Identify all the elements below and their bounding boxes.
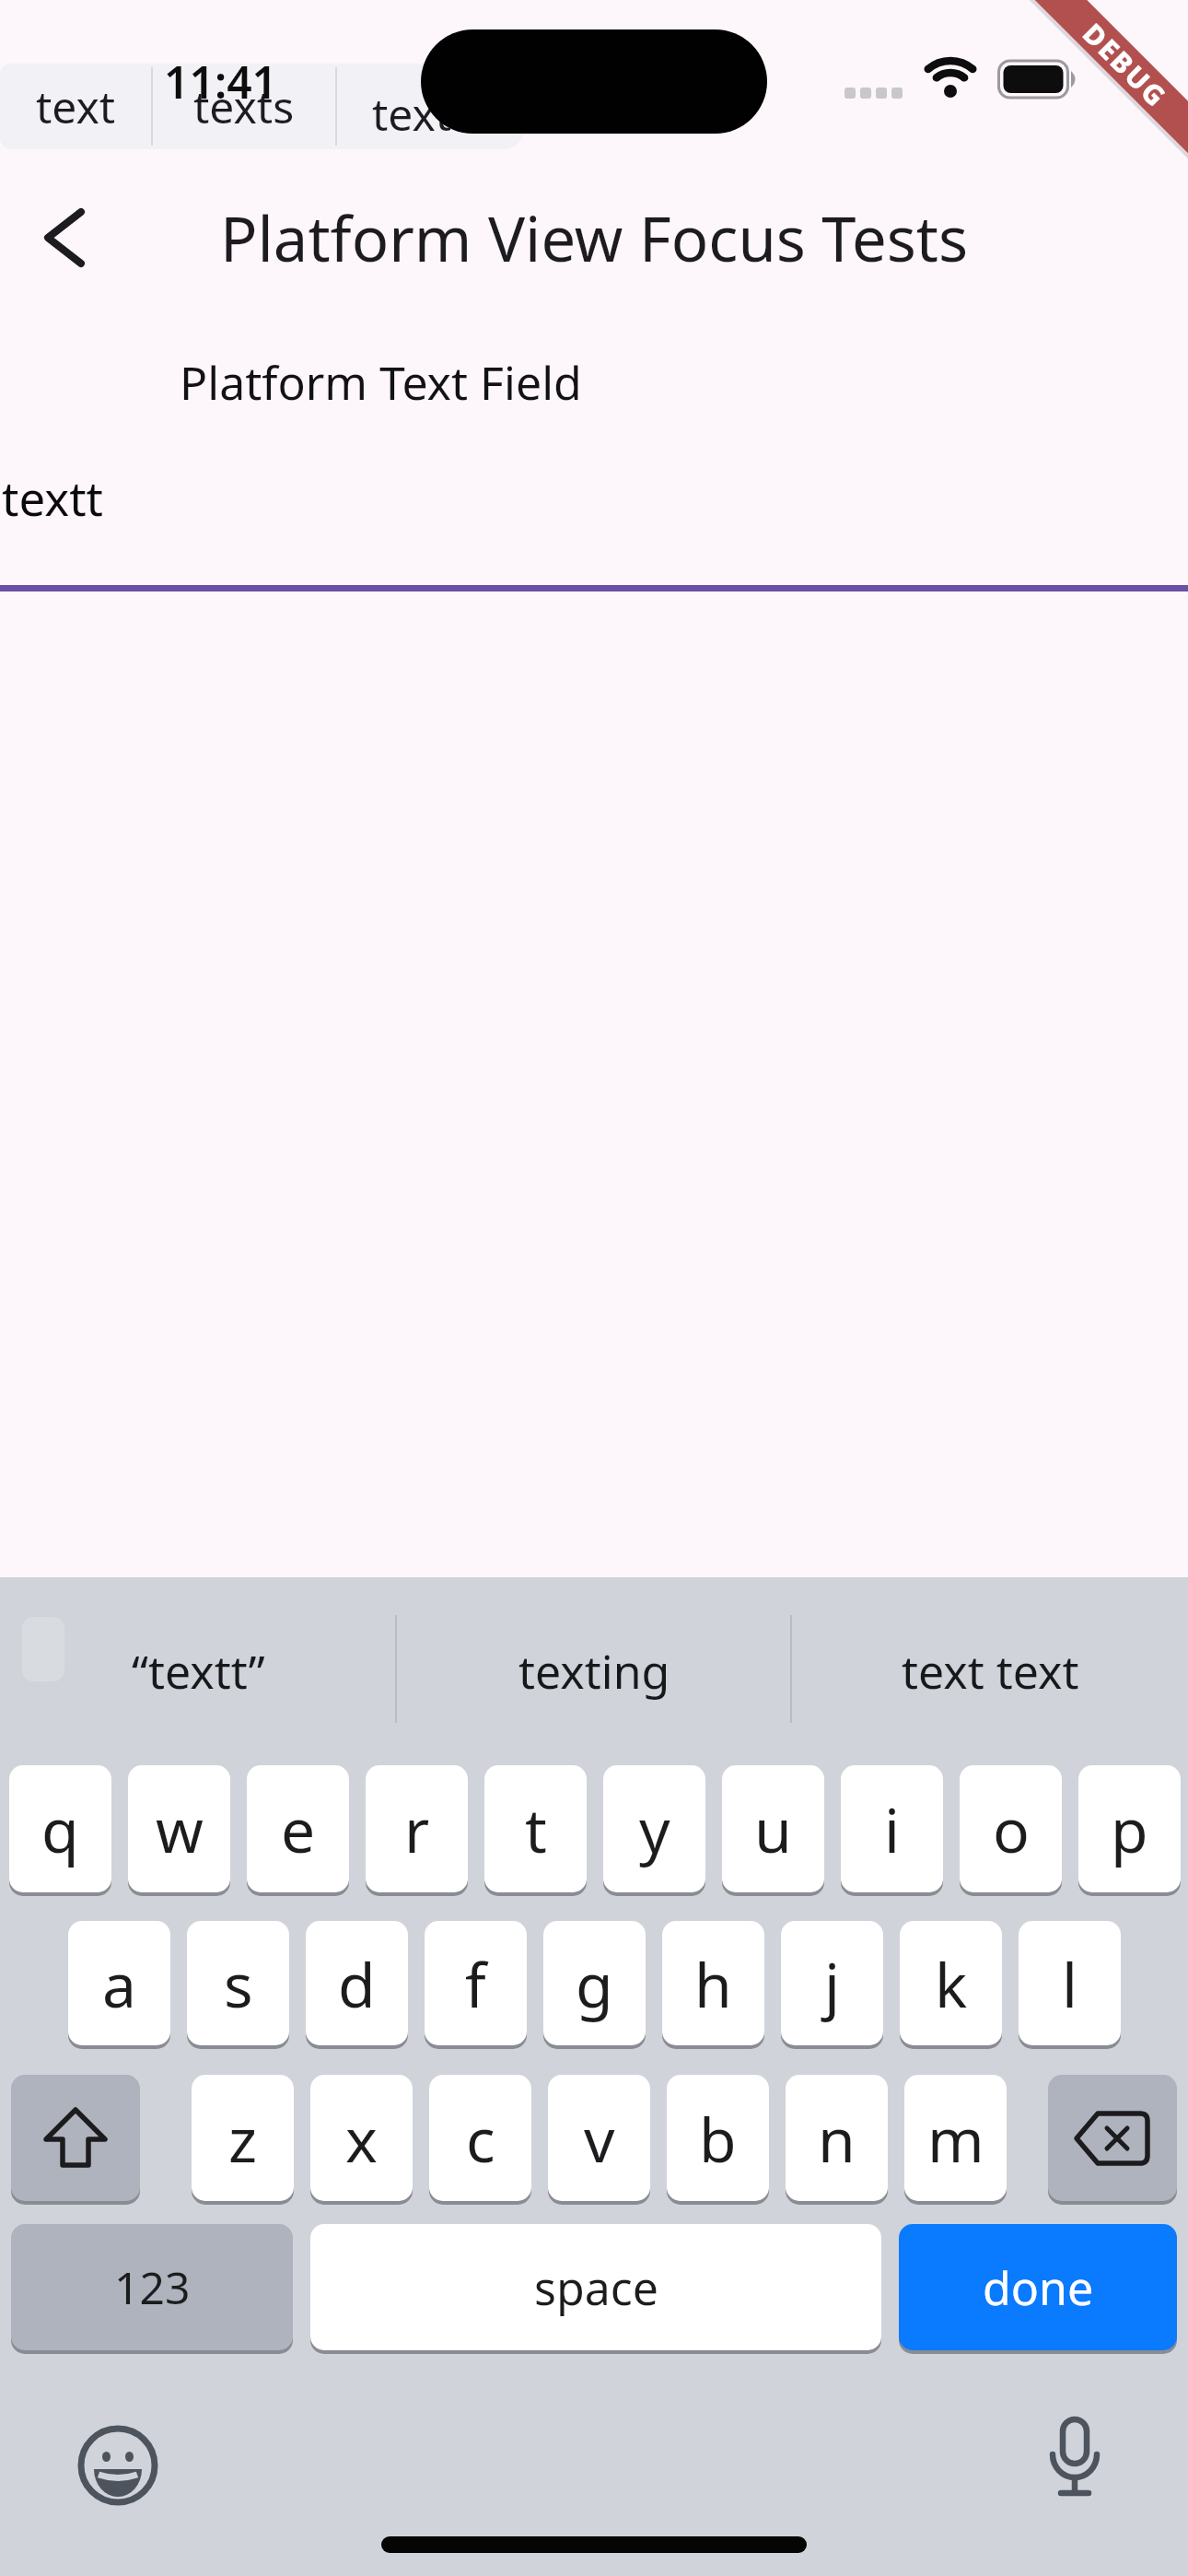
staticText: textt — [2, 465, 103, 529]
button[interactable]: c — [429, 2075, 531, 2201]
button[interactable]: e — [247, 1765, 349, 1892]
staticText: “textt” — [132, 1640, 265, 1703]
staticText: d — [338, 1942, 376, 2025]
button[interactable]: z — [192, 2075, 294, 2201]
button[interactable]: v — [548, 2075, 650, 2201]
button[interactable] — [11, 2075, 140, 2201]
staticText: j — [824, 1942, 841, 2025]
staticText: w — [156, 1787, 204, 1870]
button[interactable] — [1048, 2075, 1177, 2201]
button[interactable]: m — [904, 2075, 1007, 2201]
staticText: r — [404, 1787, 430, 1870]
staticText: x — [345, 2097, 378, 2180]
button[interactable]: x — [310, 2075, 413, 2201]
staticText: s — [224, 1942, 253, 2025]
button[interactable]: k — [900, 1921, 1002, 2045]
button[interactable]: q — [9, 1765, 111, 1892]
staticText: t — [525, 1787, 547, 1870]
button[interactable]: texting — [396, 1598, 792, 1745]
button[interactable]: o — [960, 1765, 1062, 1892]
button[interactable] — [77, 2425, 158, 2506]
staticText: p — [1111, 1787, 1148, 1870]
staticText: text text — [902, 1640, 1079, 1703]
button[interactable]: a — [68, 1921, 170, 2045]
button[interactable]: 123 — [11, 2224, 293, 2350]
button[interactable]: space — [310, 2224, 881, 2350]
staticText: u — [754, 1787, 792, 1870]
button[interactable]: “textt” — [0, 1598, 396, 1745]
button[interactable] — [1047, 2417, 1102, 2507]
button[interactable]: y — [603, 1765, 705, 1892]
staticText: b — [699, 2097, 737, 2180]
button[interactable]: s — [187, 1921, 289, 2045]
button[interactable] — [41, 209, 87, 266]
staticText: m — [927, 2097, 984, 2180]
button[interactable]: text — [0, 64, 151, 149]
staticText: l — [1062, 1942, 1078, 2025]
button[interactable]: j — [781, 1921, 883, 2045]
staticText: DEBUG — [1075, 14, 1176, 115]
button[interactable]: f — [425, 1921, 527, 2045]
staticText: c — [466, 2097, 495, 2180]
staticText: y — [639, 1787, 670, 1870]
button[interactable]: h — [662, 1921, 764, 2045]
button[interactable]: l — [1019, 1921, 1121, 2045]
staticText: texts — [193, 76, 295, 136]
staticText: z — [228, 2097, 258, 2180]
staticText: a — [102, 1942, 137, 2025]
staticText: v — [584, 2097, 615, 2180]
staticText: 123 — [114, 2257, 191, 2317]
staticText: done — [983, 2256, 1094, 2319]
staticText: q — [41, 1787, 79, 1870]
staticText: space — [534, 2256, 658, 2319]
button[interactable]: p — [1078, 1765, 1181, 1892]
staticText: texting — [518, 1640, 670, 1703]
staticText: 11:41 — [164, 52, 278, 111]
button[interactable]: texts — [153, 64, 335, 149]
button[interactable]: text — [372, 84, 452, 144]
button[interactable]: d — [306, 1921, 408, 2045]
staticText: Platform View Focus Tests — [220, 195, 969, 279]
staticText: f — [465, 1942, 486, 2025]
button[interactable]: i — [841, 1765, 943, 1892]
button[interactable]: done — [899, 2224, 1177, 2350]
staticText: i — [884, 1787, 901, 1870]
button[interactable]: u — [722, 1765, 824, 1892]
button[interactable]: t — [484, 1765, 587, 1892]
staticText: h — [694, 1942, 732, 2025]
staticText: k — [935, 1942, 968, 2025]
staticText: text — [372, 84, 452, 144]
button[interactable]: b — [667, 2075, 769, 2201]
staticText: Platform Text Field — [180, 351, 582, 414]
button[interactable]: text text — [792, 1598, 1188, 1745]
staticText: n — [818, 2097, 856, 2180]
staticText: e — [281, 1787, 316, 1870]
staticText: g — [576, 1942, 613, 2025]
staticText: o — [993, 1787, 1030, 1870]
staticText: text — [36, 76, 116, 136]
button[interactable]: r — [366, 1765, 468, 1892]
button[interactable]: n — [786, 2075, 888, 2201]
button[interactable]: w — [128, 1765, 230, 1892]
button[interactable]: g — [543, 1921, 646, 2045]
